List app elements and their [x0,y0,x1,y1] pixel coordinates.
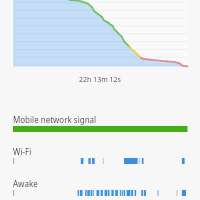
button[interactable]: Wi-Fi [0,146,200,178]
button[interactable]: Mobile network signal [0,114,200,146]
staticText: Awake [13,178,38,189]
staticText: Mobile network signal [13,114,97,125]
staticText: Wi-Fi [13,146,32,157]
staticText: 22h 13m 12s [0,75,200,85]
button[interactable]: Awake [0,178,200,200]
